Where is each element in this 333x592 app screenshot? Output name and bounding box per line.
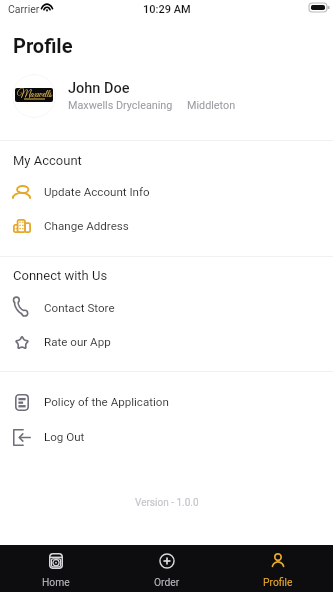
staticText: My Account [13,153,82,168]
staticText: Profile [263,576,293,588]
button[interactable]: Log Out [0,421,333,453]
staticText: John Doe [68,80,130,97]
staticText: Log Out [44,430,85,444]
staticText: Carrier [8,3,40,15]
staticText: Maxwells [17,88,52,101]
button[interactable]: Profile [222,545,333,592]
staticText: Contact Store [44,301,115,315]
staticText: Order [154,576,180,588]
button[interactable]: Home [0,545,111,592]
other: Home [49,553,63,569]
staticText: Update Account Info [44,185,150,199]
button[interactable]: Update Account Info [0,176,333,208]
staticText: Middleton [187,99,236,112]
staticText: Maxwells Drycleaning [68,99,173,112]
staticText: 10:29 AM [143,3,191,16]
staticText: Version - 1.0.0 [135,497,199,509]
staticText: Profile [13,34,73,57]
staticText: Rate our App [44,335,111,349]
button[interactable]: Change Address [0,210,333,242]
button[interactable]: Contact Store [0,292,333,324]
staticText: Policy of the Application [44,395,169,409]
button[interactable]: Order [111,545,222,592]
button[interactable]: Rate our App [0,326,333,358]
button[interactable]: Policy of the Application [0,386,333,418]
other: Profile [270,553,286,569]
staticText: Home [42,576,70,588]
staticText: Change Address [44,219,129,233]
staticText: Connect with Us [13,268,108,283]
other: Order [159,553,175,569]
